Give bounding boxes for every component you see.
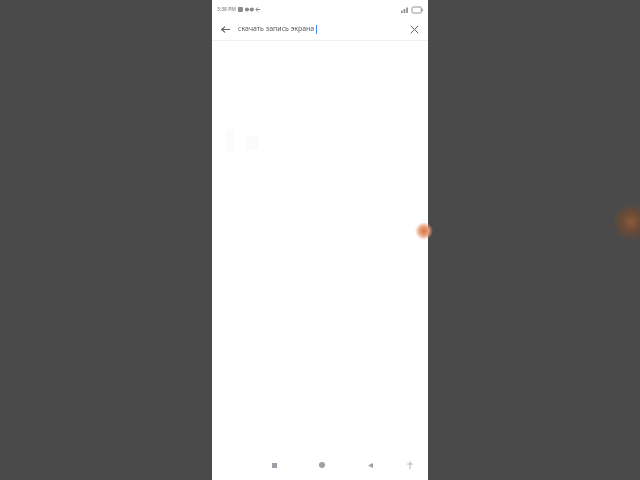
- button[interactable]: Home: [312, 455, 332, 475]
- button[interactable]: Hide keyboard: [400, 455, 420, 475]
- button[interactable]: Back: [217, 21, 233, 37]
- staticText: скачать запись экрана: [238, 24, 315, 34]
- button[interactable]: скачать запись экрана: [238, 24, 406, 34]
- button[interactable]: Clear search: [406, 21, 422, 37]
- button[interactable]: Recent apps: [264, 455, 284, 475]
- staticText: 3:38 PM: [217, 6, 236, 13]
- button[interactable]: Back: [360, 455, 380, 475]
